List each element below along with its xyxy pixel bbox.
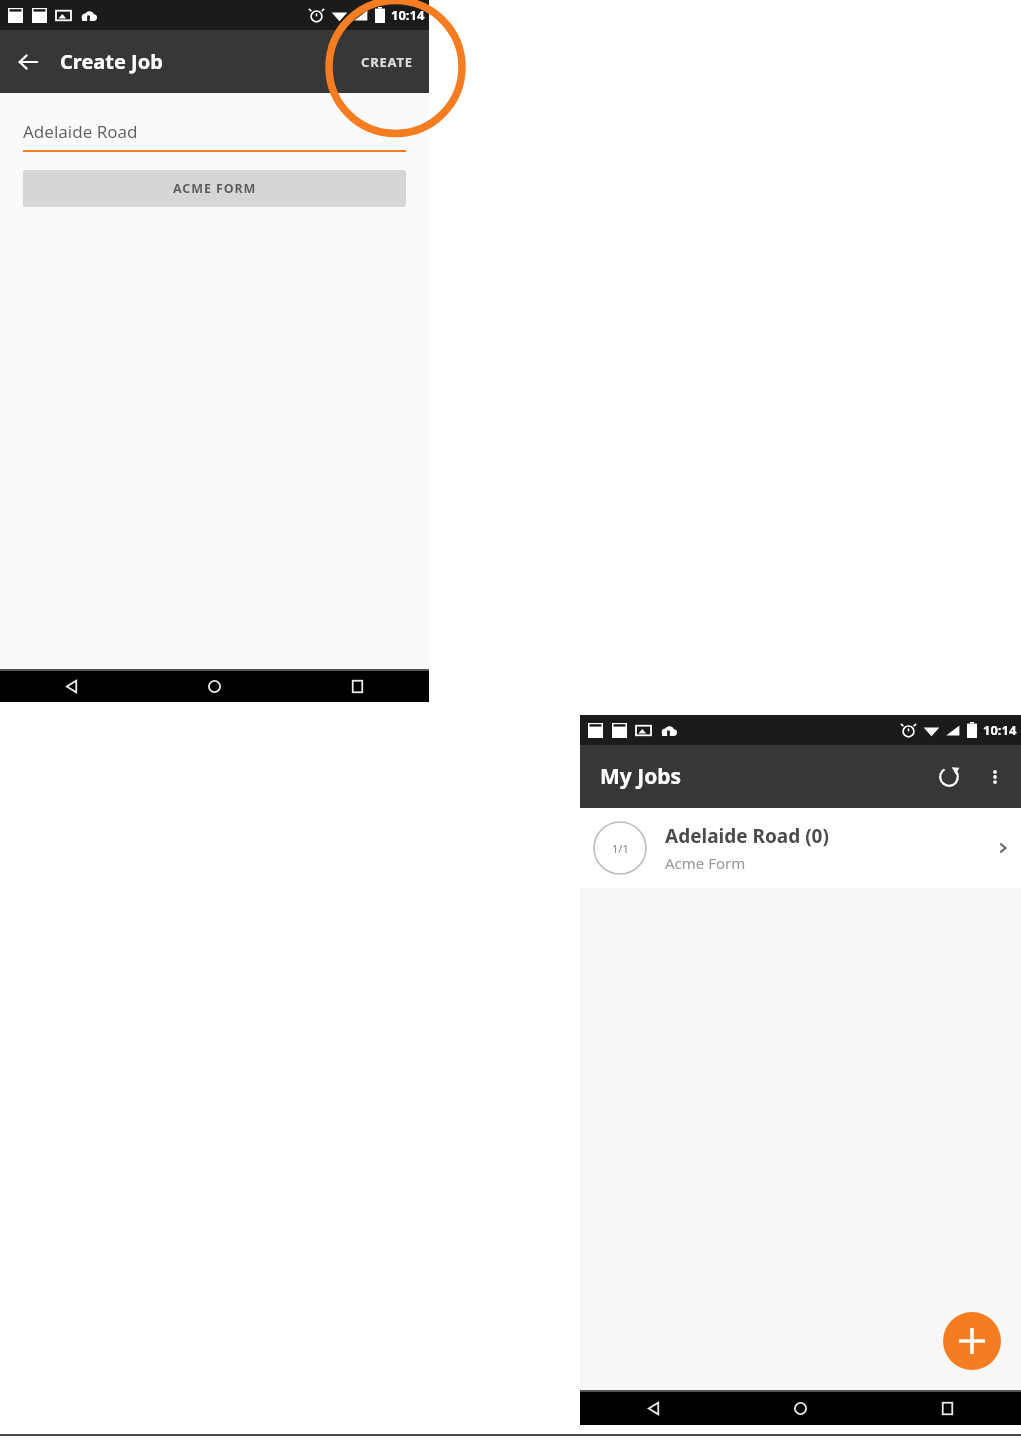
staticText: Create Job bbox=[60, 48, 163, 75]
button[interactable]: Back bbox=[0, 671, 143, 702]
staticText: 10:14 bbox=[983, 721, 1017, 739]
button[interactable]: Back bbox=[0, 34, 56, 90]
staticText: 1/1 bbox=[612, 841, 629, 856]
button[interactable]: Add job bbox=[943, 1312, 1001, 1370]
staticText: CREATE bbox=[361, 53, 413, 71]
staticText: ACME FORM bbox=[173, 180, 257, 197]
button[interactable]: Back bbox=[580, 1392, 727, 1425]
staticText: My Jobs bbox=[600, 762, 682, 791]
button[interactable]: CREATE bbox=[345, 30, 429, 93]
button[interactable]: Recents bbox=[286, 671, 429, 702]
staticText: Adelaide Road (0) bbox=[665, 823, 829, 849]
button[interactable]: Home bbox=[727, 1392, 874, 1425]
button[interactable]: Adelaide Road bbox=[23, 120, 406, 152]
button[interactable]: Home bbox=[143, 671, 286, 702]
button[interactable]: ACME FORM bbox=[23, 170, 406, 207]
button[interactable]: 1/1 bbox=[580, 808, 1021, 888]
staticText: Adelaide Road bbox=[23, 120, 138, 143]
button[interactable]: Recents bbox=[874, 1392, 1021, 1425]
staticText: 10:14 bbox=[391, 6, 425, 24]
button[interactable]: More options bbox=[973, 755, 1017, 799]
button[interactable]: Refresh bbox=[925, 753, 973, 801]
staticText: Acme Form bbox=[665, 853, 746, 873]
